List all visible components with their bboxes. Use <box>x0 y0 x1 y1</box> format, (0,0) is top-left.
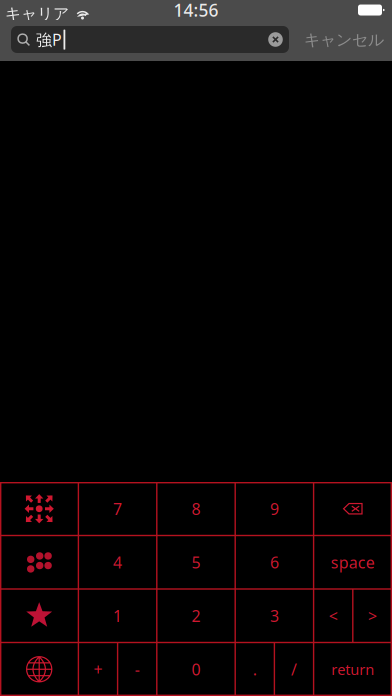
staticText: 強P <box>36 29 62 50</box>
button[interactable]: 3 <box>235 589 314 642</box>
staticText: - <box>135 659 140 680</box>
button[interactable]: Switch keyboard <box>0 642 78 696</box>
button[interactable]: 9 <box>235 482 314 535</box>
button[interactable]: Delete <box>314 482 392 535</box>
button[interactable]: next <box>353 589 392 642</box>
button[interactable]: plus <box>78 642 118 696</box>
staticText: キャンセル <box>304 30 384 50</box>
staticText: + <box>93 659 102 680</box>
staticText: 2 <box>191 605 200 626</box>
staticText: 4 <box>113 552 122 573</box>
staticText: 5 <box>191 552 200 573</box>
button[interactable]: 2 <box>157 589 235 642</box>
button[interactable]: minus <box>118 642 157 696</box>
button[interactable]: space <box>314 535 392 589</box>
button[interactable]: previous <box>314 589 353 642</box>
button[interactable]: 7 <box>78 482 157 535</box>
button[interactable]: period <box>235 642 274 696</box>
button[interactable]: キャンセル <box>296 25 392 55</box>
button[interactable]: 5 <box>157 535 235 589</box>
button[interactable]: 0 <box>157 642 235 696</box>
staticText: キャリア <box>5 4 69 24</box>
button[interactable]: 6 <box>235 535 314 589</box>
staticText: < <box>329 605 338 626</box>
button[interactable]: slash <box>274 642 314 696</box>
button[interactable]: 1 <box>78 589 157 642</box>
staticText: . <box>253 659 257 680</box>
button[interactable]: return <box>314 642 392 696</box>
staticText: 3 <box>270 605 279 626</box>
staticText: 7 <box>113 498 122 519</box>
button[interactable]: flick input mode <box>0 482 78 535</box>
staticText: > <box>368 605 377 626</box>
button[interactable]: 4 <box>78 535 157 589</box>
button[interactable]: 8 <box>157 482 235 535</box>
staticText: 1 <box>113 605 122 626</box>
staticText: 14:56 <box>173 0 218 21</box>
staticText: 6 <box>270 552 279 573</box>
staticText: return <box>331 659 374 679</box>
staticText: 0 <box>191 659 200 680</box>
button[interactable]: Braille input <box>0 535 78 589</box>
button[interactable]: 強P <box>11 26 289 53</box>
staticText: 8 <box>191 498 200 519</box>
button[interactable]: Favorites <box>0 589 78 642</box>
staticText: / <box>291 659 297 680</box>
staticText: 9 <box>270 498 279 519</box>
staticText: space <box>331 552 375 573</box>
